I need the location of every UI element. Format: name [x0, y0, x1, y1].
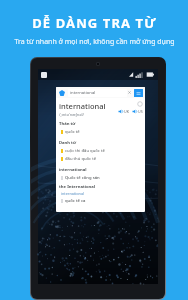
other: Dictionary — [59, 90, 65, 96]
staticText: quốc tế — [65, 129, 80, 135]
staticText: international — [59, 167, 87, 173]
button[interactable]: đấu thủ quốc tế — [56, 155, 145, 163]
staticText: DỄ DÀNG TRA TỪ — [32, 14, 157, 32]
button[interactable]: Search — [134, 89, 143, 97]
staticText: đấu thủ quốc tế — [65, 156, 97, 162]
button[interactable]: quốc tế — [56, 128, 145, 136]
staticText: international — [59, 101, 106, 111]
staticText: international — [70, 90, 96, 96]
staticText: Danh từ — [59, 140, 77, 146]
staticText: cuộc thi đấu quốc tế — [65, 148, 105, 154]
button[interactable]: Clear — [127, 90, 132, 95]
staticText: US — [138, 109, 143, 114]
staticText: Quốc tế công sản — [65, 175, 100, 181]
button[interactable]: cuộc thi đấu quốc tế — [56, 147, 145, 155]
button[interactable]: quốc tế ca — [56, 197, 145, 205]
button[interactable]: Favorite — [137, 101, 143, 107]
staticText: international — [61, 191, 84, 196]
staticText: Thán từ — [59, 121, 76, 127]
button[interactable]: Quốc tế công sản — [56, 174, 145, 182]
other: Notification — [41, 72, 47, 78]
staticText: quốc tế ca — [65, 198, 86, 204]
staticText: UK — [124, 109, 129, 114]
staticText: the International — [59, 184, 96, 190]
button[interactable]: Play UK pronunciation — [118, 109, 129, 114]
staticText: /,ɪntə'næʃnəl/ — [59, 112, 84, 117]
staticText: Tra từ nhanh ở mọi nơi, không cần mở ứng… — [14, 37, 175, 47]
button[interactable]: international — [68, 89, 127, 97]
button[interactable]: Play US pronunciation — [132, 109, 143, 114]
